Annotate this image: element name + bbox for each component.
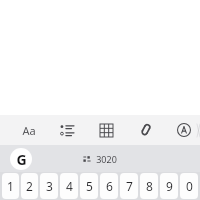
staticText: 0 [186,178,193,194]
button[interactable]: 3020 [83,153,117,165]
staticText: 7 [126,178,133,194]
button[interactable]: Bulleted list [54,117,80,143]
button[interactable]: Attach file [132,117,158,143]
button[interactable]: 4 [60,173,78,199]
staticText: 2 [26,178,33,194]
button[interactable]: 0 [180,173,198,199]
staticText: 5 [86,178,93,194]
button[interactable]: 7 [120,173,138,199]
button[interactable]: 6 [100,173,118,199]
staticText: 3 [46,178,53,194]
button[interactable]: 8 [140,173,158,199]
button[interactable]: 2 [21,173,38,199]
button[interactable]: Aa [16,117,42,143]
button[interactable]: 1 [2,173,19,199]
button[interactable]: 3 [40,173,58,199]
button[interactable]: 9 [160,173,178,199]
staticText: 4 [66,178,73,194]
staticText: 1 [7,178,14,194]
staticText: 9 [166,178,173,194]
button[interactable]: Google search [10,148,32,170]
staticText: G [16,150,27,169]
staticText: 6 [106,178,113,194]
button[interactable]: Close [197,116,200,144]
button[interactable]: Insert table [93,117,119,143]
button[interactable]: Markup [171,117,197,143]
staticText: 3020 [96,153,117,165]
staticText: Aa [22,123,36,138]
staticText: 8 [146,178,153,194]
button[interactable]: 5 [80,173,98,199]
